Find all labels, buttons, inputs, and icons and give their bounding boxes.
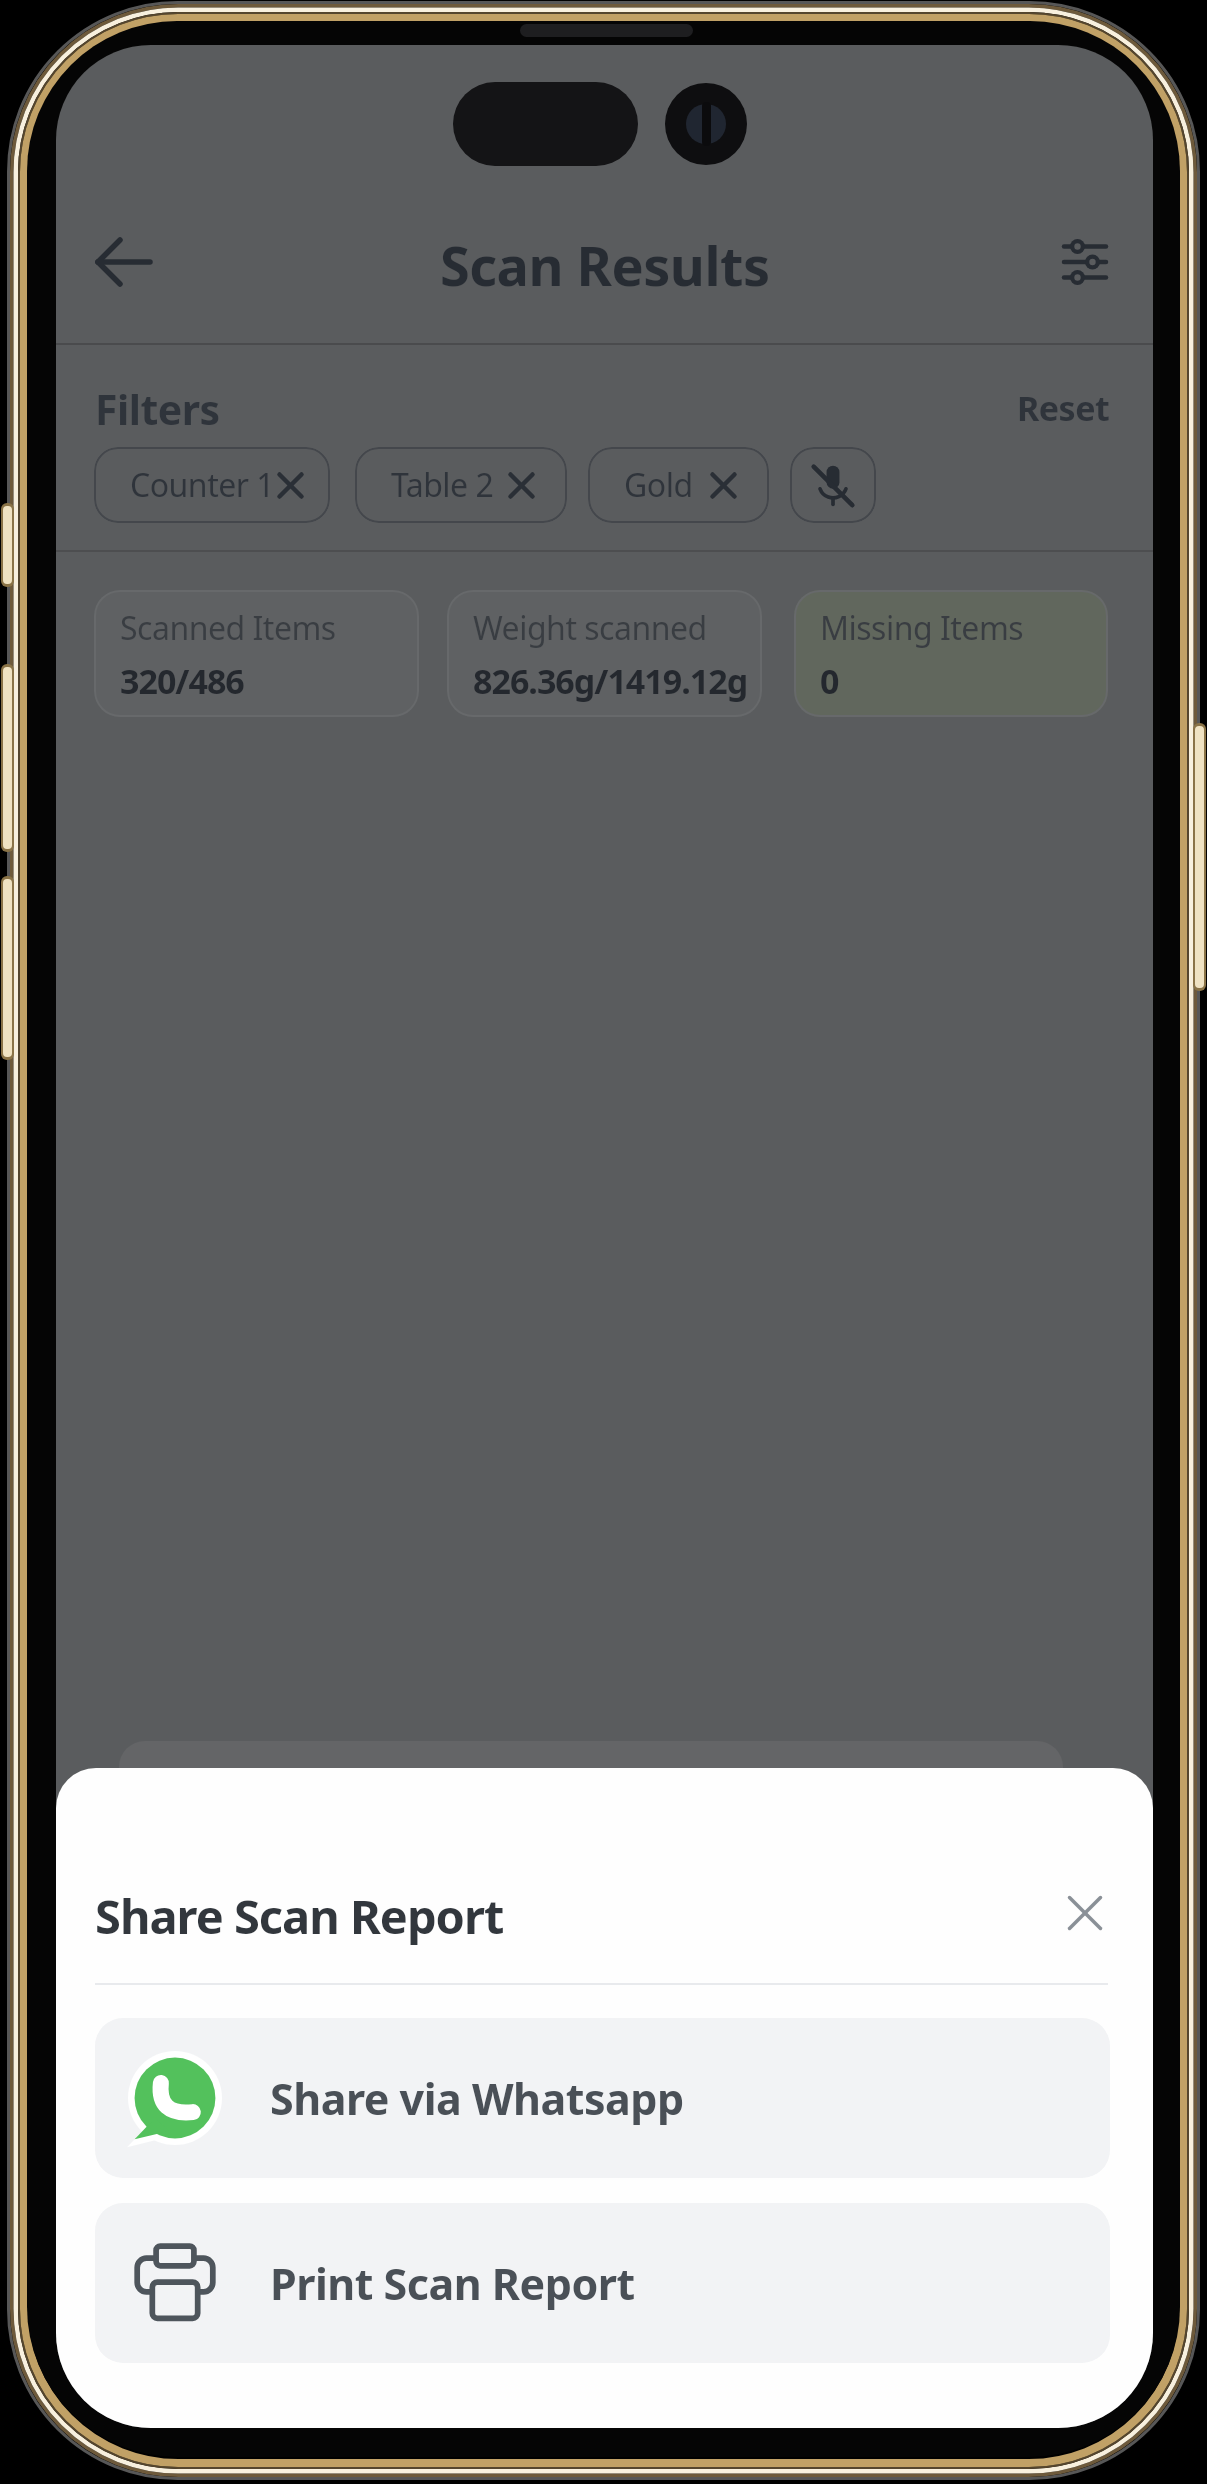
staticText: Scanned Items xyxy=(120,606,336,650)
button[interactable] xyxy=(1055,1883,1115,1943)
staticText: Filters xyxy=(95,381,220,437)
staticText: 826.36g/1419.12g xyxy=(473,658,748,704)
button[interactable]: Reset xyxy=(910,385,1110,433)
button[interactable]: Print Scan Report xyxy=(95,2203,1110,2363)
staticText: Reset xyxy=(1017,385,1110,431)
button[interactable]: Scanned Items xyxy=(94,590,419,717)
staticText: Share via Whatsapp xyxy=(270,2069,684,2128)
button[interactable]: Missing Items xyxy=(794,590,1108,717)
staticText: Scan Results xyxy=(440,228,770,296)
staticText: 320/486 xyxy=(120,658,244,704)
staticText: 0 xyxy=(820,658,839,704)
staticText: Missing Items xyxy=(820,606,1024,650)
staticText: Weight scanned xyxy=(473,606,707,650)
button[interactable]: Weight scanned xyxy=(447,590,762,717)
staticText: Share Scan Report xyxy=(95,1884,504,1948)
button[interactable] xyxy=(92,232,156,292)
staticText: Gold xyxy=(624,463,693,507)
button[interactable] xyxy=(1041,228,1129,296)
staticText: Print Scan Report xyxy=(270,2254,635,2313)
button[interactable]: Table 2 xyxy=(355,447,567,523)
staticText: Table 2 xyxy=(391,463,494,507)
button[interactable]: Gold xyxy=(588,447,769,523)
button[interactable]: Share via Whatsapp xyxy=(95,2018,1110,2178)
button[interactable]: Counter 1 xyxy=(94,447,330,523)
button[interactable] xyxy=(790,447,876,523)
staticText: Counter 1 xyxy=(130,463,275,507)
